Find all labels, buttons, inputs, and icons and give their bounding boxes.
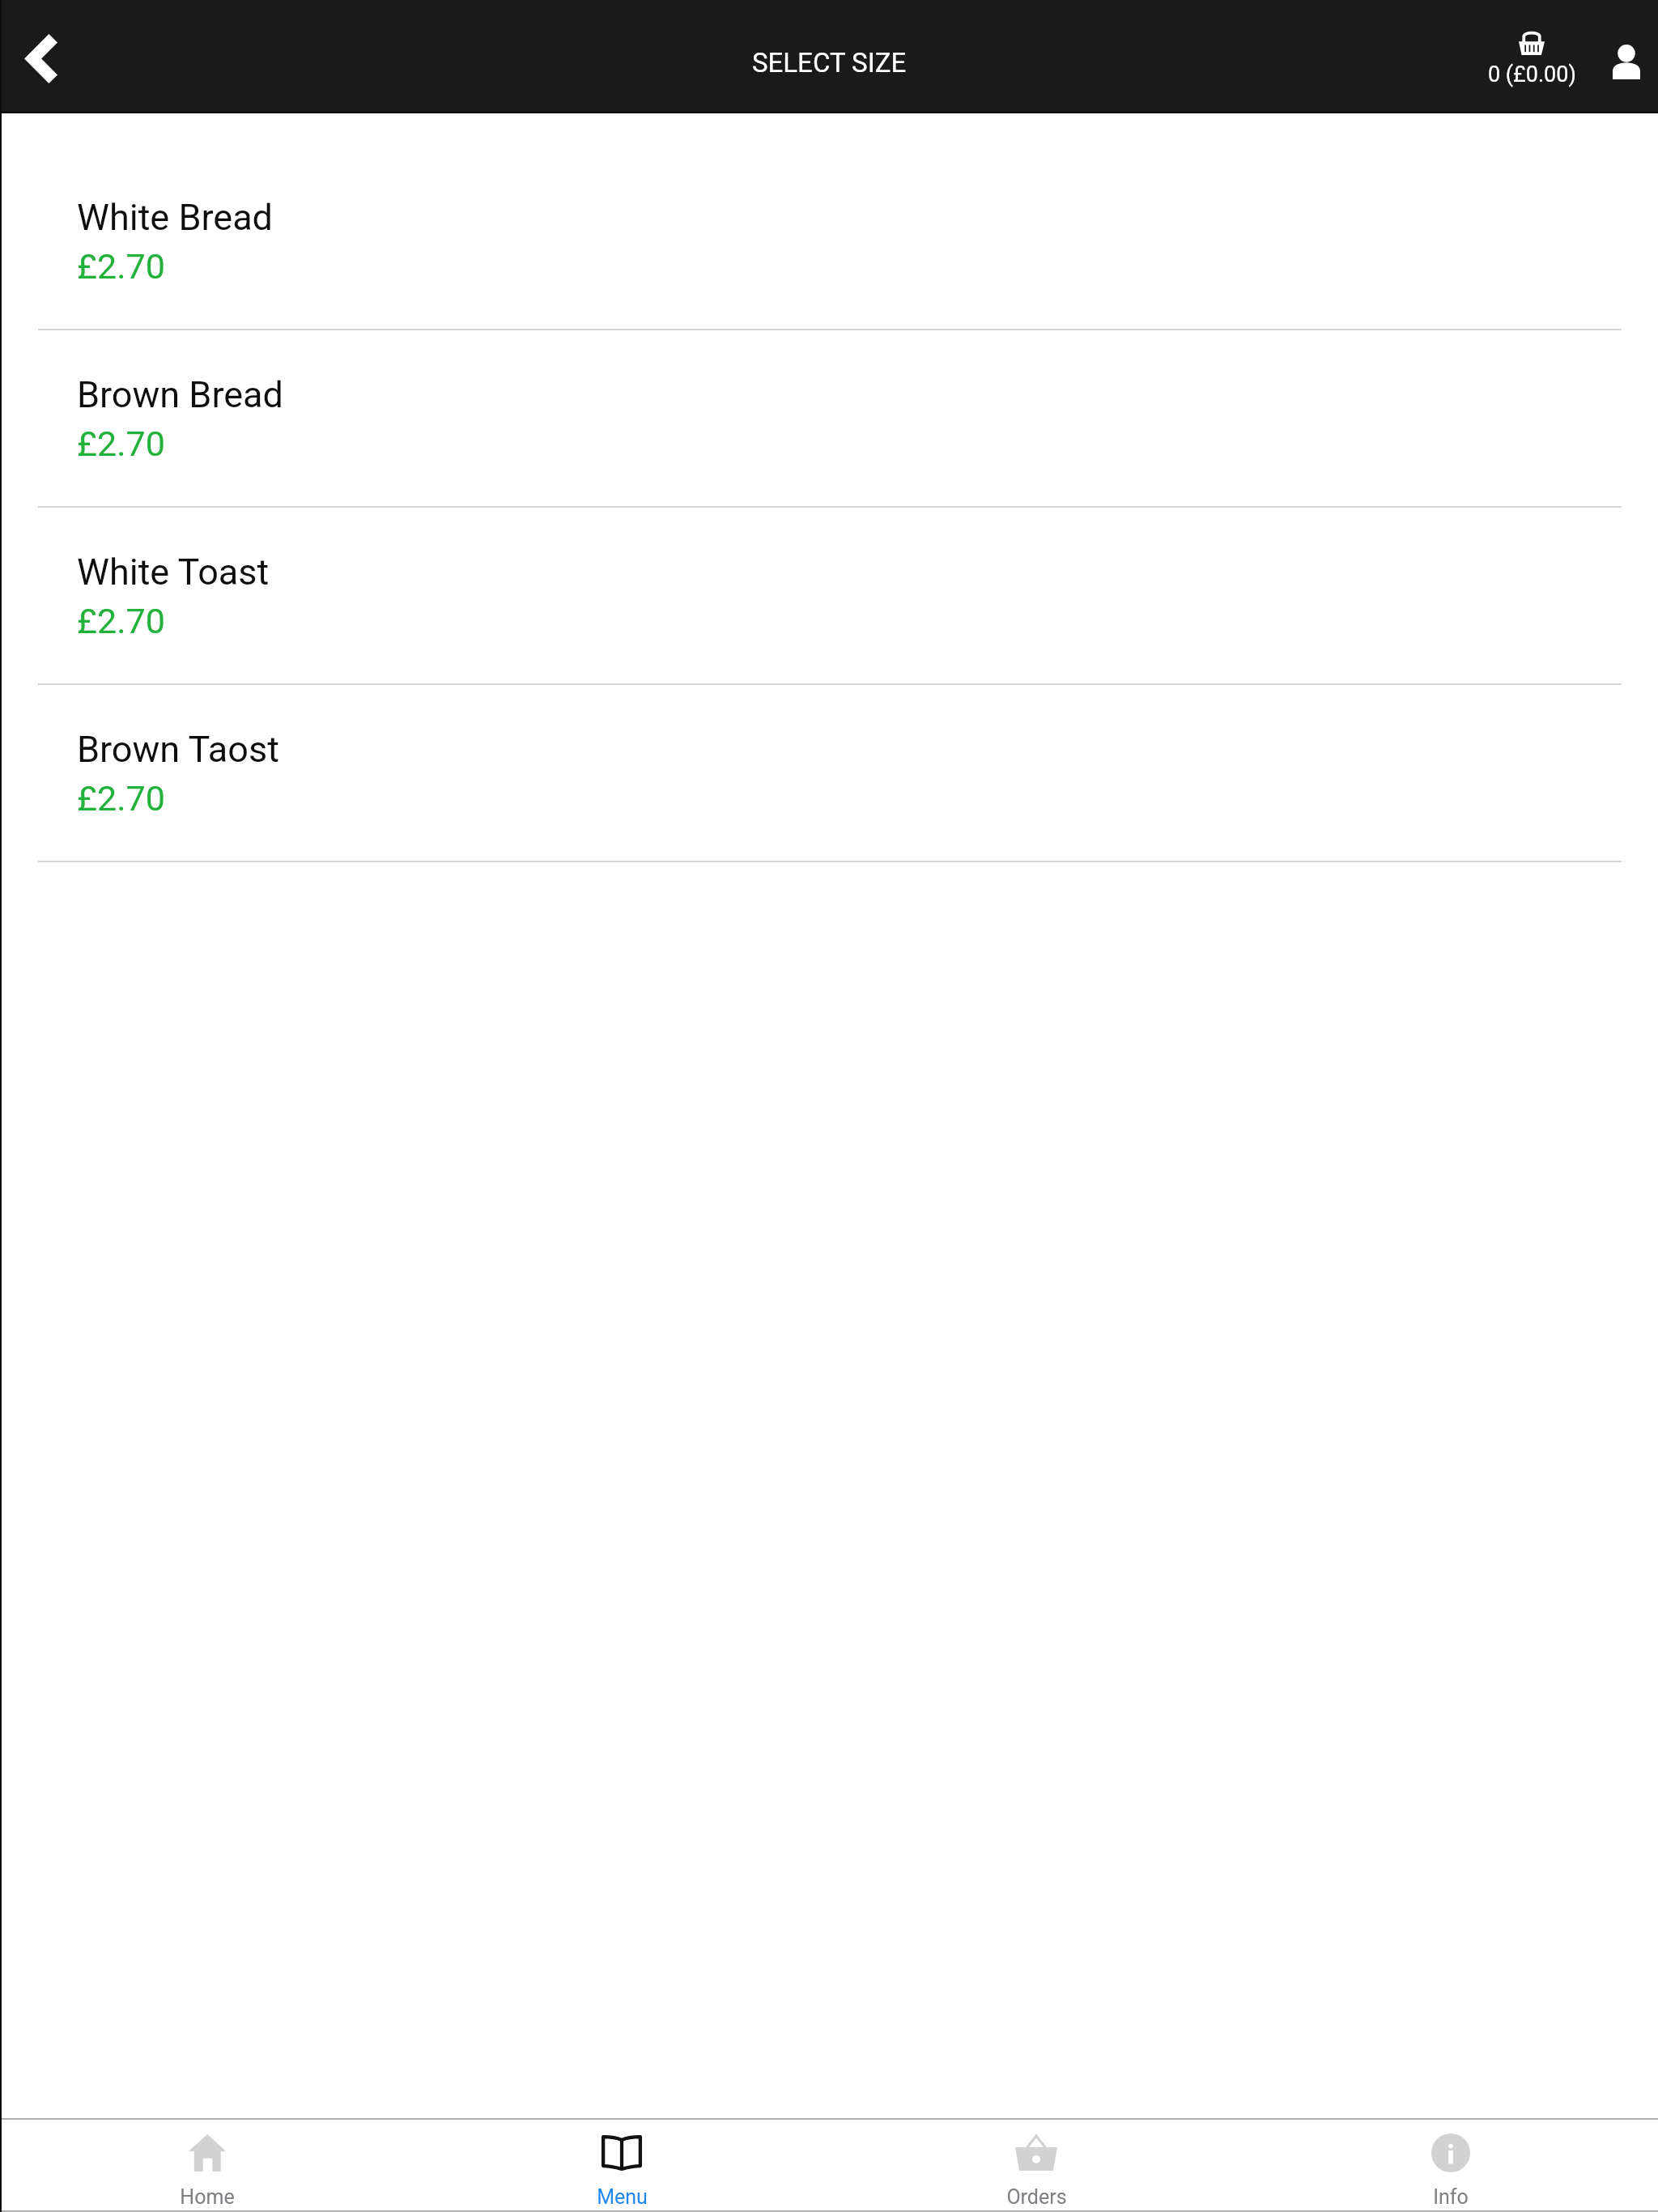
staticText: £2.70 — [77, 778, 165, 819]
button[interactable]: Back — [0, 0, 105, 112]
staticText: Orders — [1006, 2185, 1067, 2209]
button[interactable]: Home — [0, 2120, 414, 2209]
staticText: £2.70 — [77, 423, 165, 464]
button[interactable]: Basket — [1475, 32, 1588, 87]
staticText: Info — [1433, 2185, 1469, 2209]
staticText: White Bread — [77, 196, 273, 239]
button[interactable]: Account — [1588, 0, 1658, 112]
staticText: 0 (£0.00) — [1488, 62, 1576, 87]
staticText: Menu — [597, 2185, 648, 2209]
button[interactable]: Menu — [414, 2120, 829, 2209]
staticText: Home — [180, 2185, 235, 2209]
staticText: White Toast — [77, 551, 270, 593]
button[interactable]: Brown Bread — [0, 330, 1658, 508]
button[interactable]: Brown Taost — [0, 685, 1658, 862]
staticText: £2.70 — [77, 246, 165, 287]
button[interactable]: Orders — [829, 2120, 1243, 2209]
staticText: Brown Bread — [77, 373, 283, 416]
button[interactable]: White Bread — [0, 153, 1658, 330]
staticText: SELECT SIZE — [752, 47, 907, 79]
button[interactable]: White Toast — [0, 508, 1658, 685]
staticText: Brown Taost — [77, 728, 279, 771]
staticText: £2.70 — [77, 601, 165, 641]
button[interactable]: Info — [1243, 2120, 1658, 2209]
